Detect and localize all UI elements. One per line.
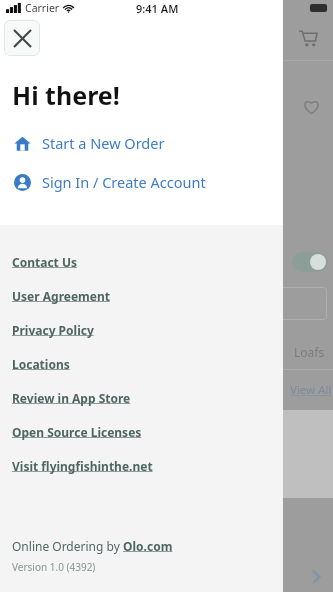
button[interactable]: Cart — [297, 27, 319, 49]
button[interactable]: Olo.com — [123, 538, 173, 554]
staticText: Contact Us — [12, 254, 78, 270]
staticText: Sign In / Create Account — [42, 172, 206, 192]
button[interactable]: Review in App Store — [0, 383, 283, 417]
staticText: Privacy Policy — [12, 322, 94, 338]
staticText: Visit flyingfishinthe.net — [12, 458, 153, 474]
button[interactable]: Contact Us — [0, 247, 283, 281]
staticText: User Agreement — [12, 288, 110, 304]
button[interactable]: Visit flyingfishinthe.net — [0, 451, 283, 485]
staticText: Locations — [12, 356, 70, 372]
button[interactable]: View All — [290, 382, 332, 398]
staticText: Loafs — [294, 344, 325, 360]
staticText: Version 1.0 (4392) — [12, 560, 96, 574]
button[interactable]: Open Source Licenses — [0, 417, 283, 451]
staticText: View All — [290, 382, 332, 398]
button[interactable] — [292, 252, 328, 272]
button[interactable]: Close — [4, 20, 40, 56]
staticText: 9:41 AM — [136, 1, 179, 16]
button[interactable]: Locations — [0, 349, 283, 383]
button[interactable]: Favorite — [301, 96, 321, 116]
staticText: Carrier — [25, 1, 60, 15]
staticText: Start a New Order — [42, 133, 165, 153]
button[interactable]: Next — [307, 568, 325, 586]
button[interactable]: Start a New Order — [0, 129, 283, 157]
staticText: Olo.com — [123, 538, 173, 554]
staticText: Review in App Store — [12, 390, 131, 406]
staticText: Open Source Licenses — [12, 424, 142, 440]
button[interactable]: User Agreement — [0, 281, 283, 315]
button[interactable]: Privacy Policy — [0, 315, 283, 349]
staticText: Online Ordering by — [12, 538, 123, 554]
staticText: Hi there! — [12, 78, 120, 112]
button[interactable]: Sign In / Create Account — [0, 168, 283, 196]
